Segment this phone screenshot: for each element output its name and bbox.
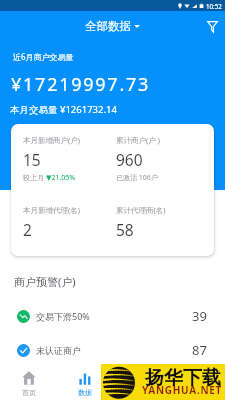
staticText: ¥17219997.73 bbox=[11, 72, 151, 97]
button[interactable]: 我的 bbox=[169, 363, 225, 400]
staticText: 商户 bbox=[134, 388, 148, 397]
staticText: 首页 bbox=[22, 388, 36, 397]
staticText: 商户预警(户) bbox=[14, 274, 76, 289]
button[interactable]: 全部数据 bbox=[75, 15, 150, 37]
staticText: ▼21.05% bbox=[46, 173, 76, 183]
staticText: 累计代理商(名) bbox=[116, 205, 166, 215]
staticText: 39 bbox=[192, 307, 207, 325]
button[interactable]: 未认证商户 bbox=[0, 338, 225, 362]
staticText: 58 bbox=[116, 219, 134, 240]
staticText: 未认证商户 bbox=[36, 345, 81, 356]
staticText: YANGHUA.NET bbox=[142, 383, 222, 397]
staticText: 10:52 bbox=[206, 2, 222, 10]
staticText: 全部数据 bbox=[85, 19, 131, 33]
staticText: 已激活 106户 bbox=[116, 173, 158, 183]
button[interactable]: 首页 bbox=[0, 363, 57, 400]
staticText: 本月新增代理(名) bbox=[23, 205, 80, 215]
staticText: 较上月 bbox=[23, 173, 46, 183]
button[interactable]: Filter bbox=[200, 14, 224, 38]
staticText: 2 bbox=[23, 219, 32, 240]
staticText: 扬华下载 bbox=[145, 366, 221, 390]
staticText: 交易下滑50% bbox=[36, 310, 90, 322]
button[interactable]: 交易下滑50% bbox=[0, 304, 225, 328]
staticText: 近6月商户交易量 bbox=[13, 51, 74, 62]
staticText: 数据 bbox=[78, 388, 92, 397]
staticText: 累计商户(户 ) bbox=[116, 135, 160, 145]
staticText: 本月新增商户(户) bbox=[23, 135, 80, 145]
staticText: 87 bbox=[192, 341, 207, 359]
staticText: 960 bbox=[116, 149, 143, 170]
staticText: 15 bbox=[23, 149, 41, 170]
button[interactable]: 数据 bbox=[57, 363, 113, 400]
staticText: 本月交易量 ¥1261732.14 bbox=[10, 103, 117, 116]
staticText: 我的 bbox=[190, 388, 204, 397]
button[interactable]: 商户 bbox=[113, 363, 169, 400]
